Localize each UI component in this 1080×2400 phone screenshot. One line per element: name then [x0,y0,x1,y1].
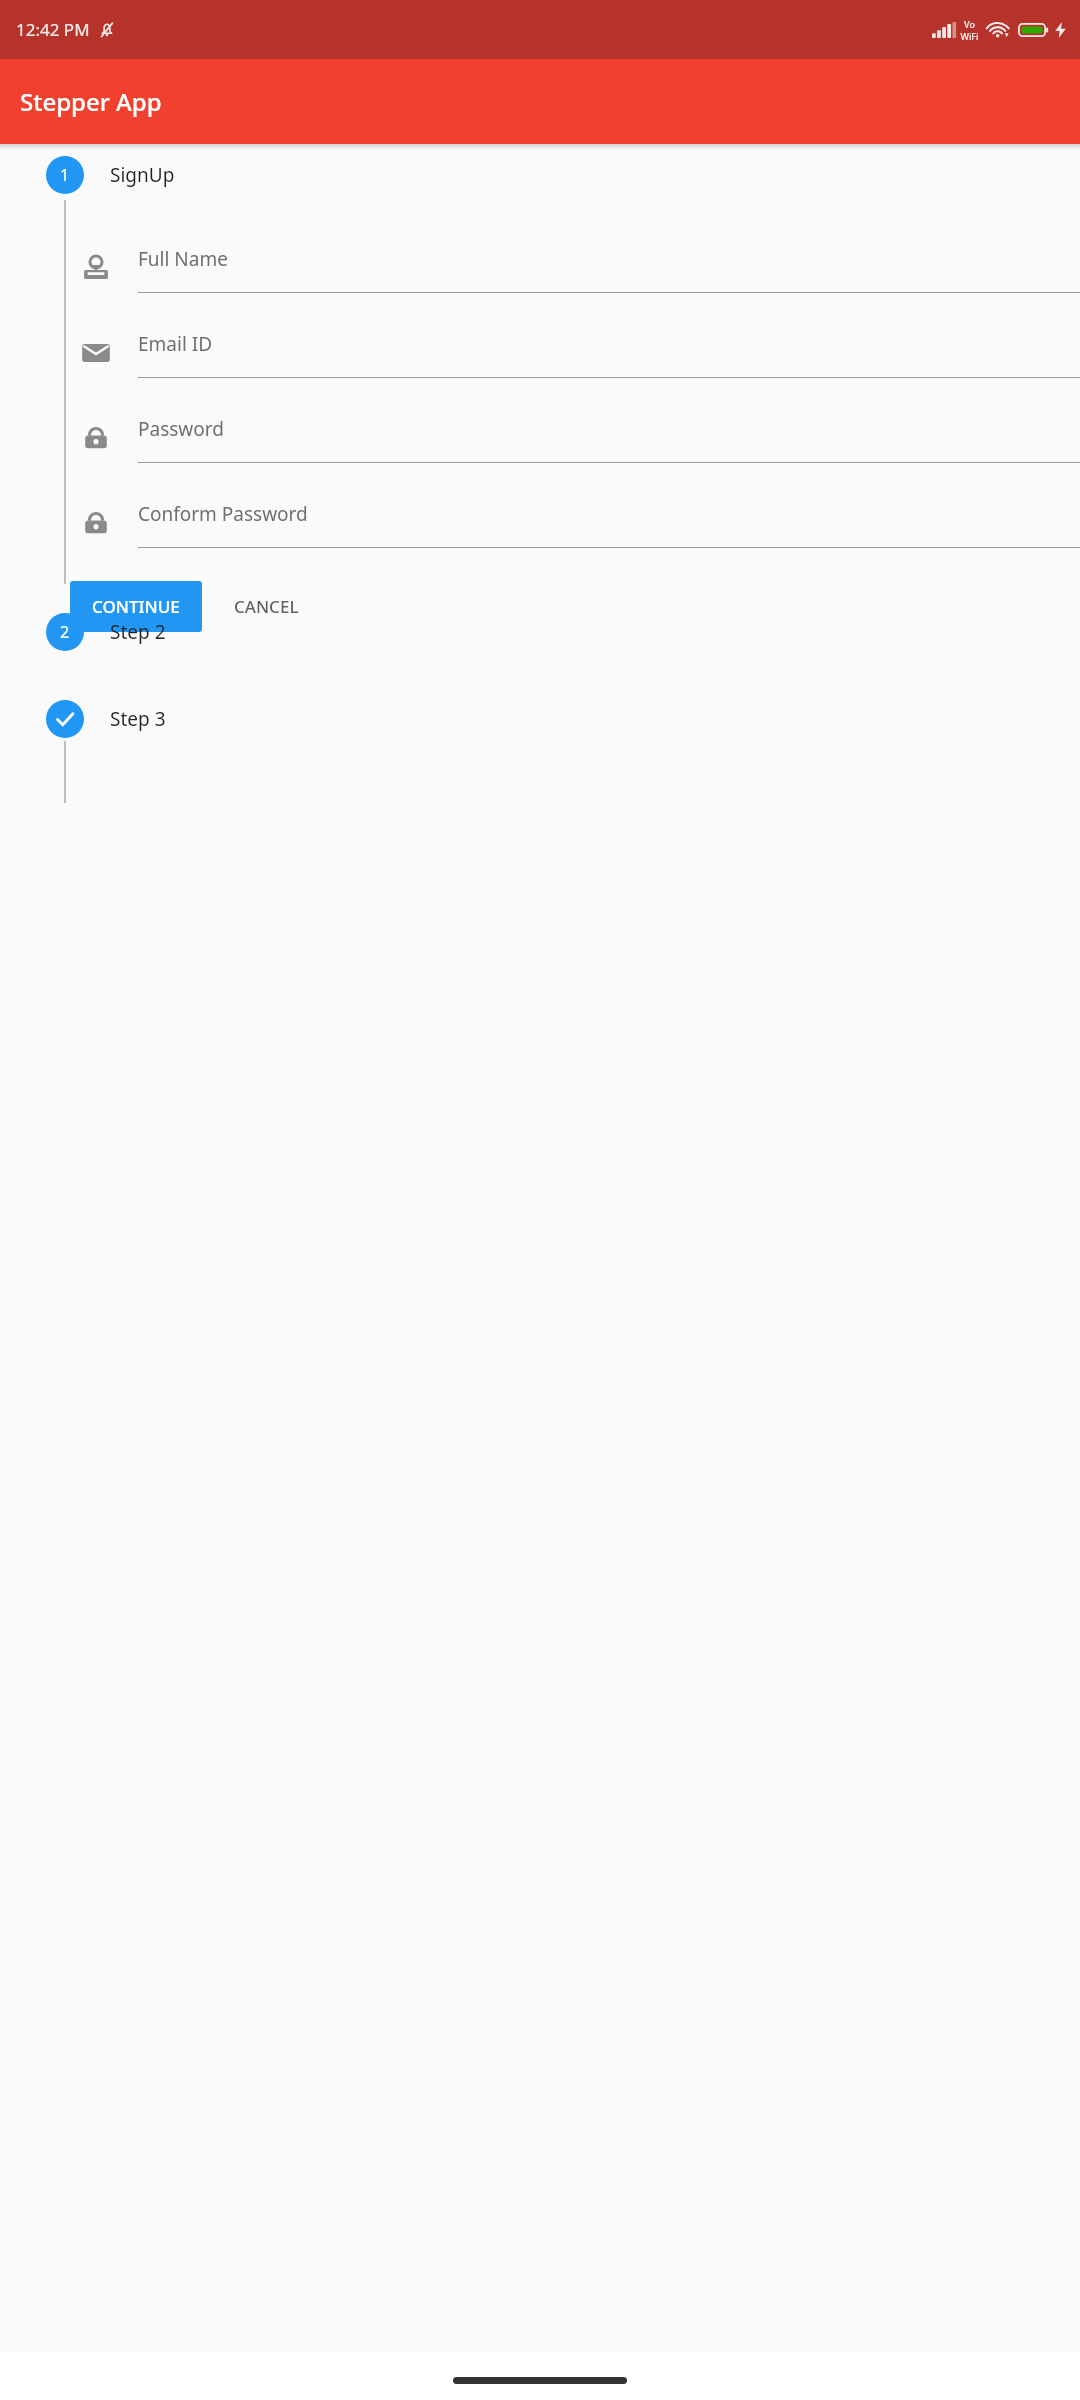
staticText: Stepper App [20,85,162,118]
staticText: 1 [60,164,70,186]
staticText: Email ID [138,331,213,357]
staticText: CANCEL [234,595,299,618]
button[interactable]: Email ID [138,327,1080,378]
staticText: Conform Password [138,501,308,527]
other: Full Name [70,242,122,294]
staticText: Vo [964,18,975,30]
other: Password [70,412,122,464]
button[interactable]: Full Name [138,242,1080,293]
button[interactable]: Step 3 [46,700,182,738]
staticText: Step 3 [110,706,166,732]
staticText: SignUp [110,162,175,188]
staticText: WiFi [960,30,979,42]
staticText: CONTINUE [92,595,180,618]
other: Email ID [70,327,122,379]
staticText: Step 2 [110,619,166,645]
button[interactable]: CANCEL [216,581,317,632]
button[interactable]: Conform Password [138,497,1080,548]
staticText: Password [138,416,224,442]
staticText: 12:42 PM [16,18,90,41]
button[interactable]: 2 [46,613,182,651]
staticText: Full Name [138,246,228,272]
button[interactable]: Password [138,412,1080,463]
staticText: 2 [60,621,70,643]
other: Conform Password [70,497,122,549]
button[interactable]: CONTINUE [70,581,202,632]
button[interactable]: 1 [46,156,191,194]
